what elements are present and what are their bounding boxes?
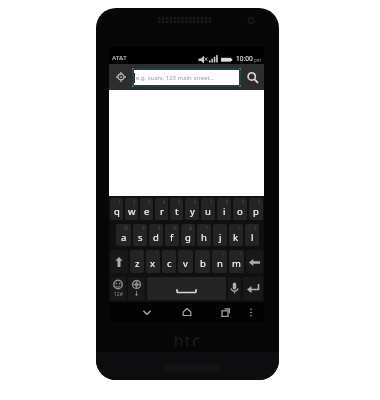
button[interactable]: My location <box>109 64 132 90</box>
staticText: o <box>237 205 243 218</box>
button[interactable]: More options <box>240 302 262 322</box>
staticText: 9 <box>242 199 245 205</box>
button[interactable]: Home <box>176 302 198 322</box>
button[interactable]: Hide keyboard <box>136 302 158 322</box>
staticText: a <box>121 231 127 244</box>
button[interactable]: & <box>181 224 195 246</box>
staticText: 6 <box>194 199 197 205</box>
staticText: p <box>253 205 259 218</box>
button[interactable]: 0 <box>249 198 263 220</box>
button[interactable]: * <box>197 224 211 246</box>
staticText: r <box>160 205 164 218</box>
staticText: l <box>251 231 254 244</box>
staticText: 5 <box>178 199 181 205</box>
staticText: m <box>232 257 241 270</box>
button[interactable]: ' <box>162 250 176 273</box>
button[interactable]: + <box>229 224 243 246</box>
button[interactable]: - <box>213 224 227 246</box>
staticText: htc <box>174 330 202 346</box>
staticText: s <box>138 231 143 244</box>
staticText: n <box>217 257 223 270</box>
button[interactable]: Enter <box>243 277 263 300</box>
staticText: : <box>189 251 191 257</box>
button[interactable]: 6 <box>185 198 199 220</box>
staticText: e.g. sushi, 123 main street... <box>136 74 215 82</box>
button[interactable]: 1 <box>110 198 123 220</box>
staticText: j <box>219 231 222 244</box>
staticText: ' <box>172 251 174 257</box>
button[interactable]: % <box>165 224 179 246</box>
button[interactable]: / <box>212 250 227 273</box>
button[interactable]: 7 <box>201 198 215 220</box>
staticText: h <box>201 231 207 244</box>
staticText: u <box>205 205 211 218</box>
staticText: 8 <box>226 199 229 205</box>
button[interactable]: e.g. sushi, 123 main street... <box>132 68 241 87</box>
button[interactable]: ( <box>245 224 259 246</box>
staticText: g <box>185 231 191 244</box>
staticText: ? <box>240 251 242 257</box>
staticText: y <box>190 205 195 218</box>
button[interactable]: @ <box>116 224 131 246</box>
staticText: ; <box>206 251 208 257</box>
staticText: * <box>206 225 209 231</box>
button[interactable]: Input language <box>128 277 145 300</box>
button[interactable]: $ <box>149 224 163 246</box>
staticText: & <box>189 225 193 231</box>
staticText: / <box>223 251 225 257</box>
button[interactable]: Voice input <box>228 277 241 300</box>
staticText: 2 <box>133 199 136 205</box>
staticText: i <box>223 205 226 218</box>
staticText: 12# <box>114 291 123 298</box>
staticText: AT&T <box>112 54 127 62</box>
staticText: x <box>150 257 156 270</box>
button[interactable]: Search <box>241 64 264 90</box>
staticText: b <box>200 257 206 270</box>
staticText: t <box>175 205 179 218</box>
staticText: pm <box>254 57 261 63</box>
staticText: 10:00 <box>236 54 253 63</box>
staticText: 1 <box>118 199 121 205</box>
staticText: " <box>156 251 158 257</box>
staticText: ( <box>255 225 257 231</box>
button[interactable]: Recent apps <box>215 302 237 322</box>
staticText: c <box>167 257 172 270</box>
button[interactable]: Shift <box>110 250 128 273</box>
button[interactable]: ? <box>229 250 244 273</box>
button[interactable]: 4 <box>155 198 168 220</box>
staticText: e <box>144 205 150 218</box>
button[interactable]: 8 <box>217 198 231 220</box>
staticText: 3 <box>148 199 151 205</box>
staticText: - <box>223 225 225 231</box>
button[interactable]: 2 <box>125 198 138 220</box>
button[interactable]: ! <box>130 250 144 273</box>
button[interactable]: ; <box>195 250 210 273</box>
button[interactable]: Backspace <box>246 250 263 273</box>
button[interactable]: 5 <box>170 198 183 220</box>
staticText: 4 <box>163 199 166 205</box>
staticText: k <box>233 231 239 244</box>
staticText: q <box>114 205 120 218</box>
button[interactable]: : <box>178 250 193 273</box>
staticText: v <box>183 257 188 270</box>
staticText: + <box>238 225 241 231</box>
staticText: z <box>135 257 140 270</box>
staticText: @ <box>124 225 129 231</box>
button[interactable]: Space <box>147 277 226 300</box>
staticText: w <box>128 205 136 218</box>
staticText: f <box>170 231 174 244</box>
staticText: 7 <box>210 199 213 205</box>
staticText: % <box>173 225 177 231</box>
staticText: ! <box>140 251 142 257</box>
button[interactable]: 3 <box>140 198 153 220</box>
staticText: d <box>153 231 159 244</box>
button[interactable]: # <box>133 224 147 246</box>
staticText: 0 <box>258 199 261 205</box>
button[interactable]: Symbols <box>110 277 126 300</box>
button[interactable]: " <box>146 250 160 273</box>
button[interactable]: 9 <box>233 198 247 220</box>
staticText: $ <box>158 225 161 231</box>
staticText: # <box>142 225 145 231</box>
